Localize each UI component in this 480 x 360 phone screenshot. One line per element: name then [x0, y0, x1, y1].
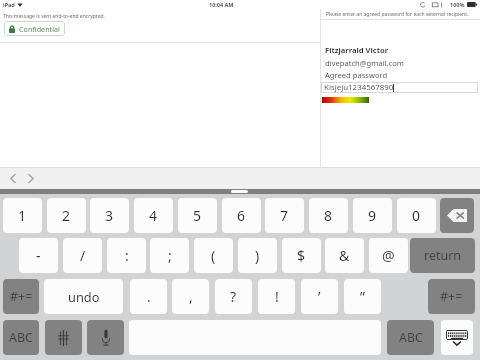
staticText: $: [297, 246, 306, 265]
staticText: ABC: [9, 329, 33, 346]
staticText: 3: [105, 206, 114, 225]
button[interactable]: return: [410, 238, 475, 273]
button[interactable]: undo: [44, 279, 123, 314]
staticText: ABC: [399, 329, 423, 346]
staticText: 2: [62, 206, 71, 225]
button[interactable]: Next field: [21, 168, 41, 188]
button[interactable]: Previous field: [3, 168, 23, 188]
button[interactable]: Dictate: [87, 320, 124, 355]
staticText: ?: [230, 287, 237, 306]
staticText: 6: [237, 206, 246, 225]
button[interactable]: #+=: [3, 279, 39, 314]
staticText: This message is sent end-to-end encrypte…: [3, 13, 105, 20]
staticText: 7: [280, 206, 289, 225]
staticText: 10:04 AM: [209, 1, 234, 8]
staticText: ): [255, 246, 260, 265]
button[interactable]: Next keyboard: [45, 320, 82, 355]
staticText: 1: [18, 206, 27, 225]
button[interactable]: ,: [172, 279, 209, 314]
button[interactable]: ’: [301, 279, 338, 314]
staticText: 9: [368, 206, 377, 225]
button[interactable]: .: [130, 279, 167, 314]
staticText: iPad: [3, 1, 15, 8]
button[interactable]: Confidential: [9, 21, 60, 36]
staticText: return: [424, 247, 462, 264]
staticText: !: [275, 287, 279, 306]
button[interactable]: 3: [90, 198, 129, 233]
button[interactable]: /: [63, 238, 102, 273]
staticText: Please enter an agreed password for each…: [326, 11, 469, 18]
button[interactable]: 4: [134, 198, 173, 233]
button[interactable]: ABC: [387, 320, 434, 355]
button[interactable]: 0: [397, 198, 436, 233]
button[interactable]: 7: [265, 198, 304, 233]
staticText: (: [211, 246, 216, 265]
staticText: undo: [68, 288, 100, 305]
staticText: 8: [324, 206, 333, 225]
staticText: divepatch@gmail.com: [325, 58, 404, 68]
staticText: 4: [149, 206, 158, 225]
staticText: &: [339, 246, 350, 265]
button[interactable]: ;: [150, 238, 189, 273]
staticText: #+=: [440, 288, 463, 305]
button[interactable]: Hide keyboard: [441, 320, 473, 355]
button[interactable]: ): [238, 238, 277, 273]
button[interactable]: Backspace: [440, 198, 474, 233]
button[interactable]: @: [369, 238, 408, 273]
button[interactable]: 1: [3, 198, 42, 233]
staticText: ’: [318, 287, 321, 306]
staticText: ”: [360, 287, 366, 306]
staticText: :: [125, 246, 129, 265]
staticText: Kisjeju1234567890: [324, 82, 394, 93]
button[interactable]: -: [19, 238, 58, 273]
button[interactable]: #+=: [428, 279, 475, 314]
button[interactable]: 2: [47, 198, 86, 233]
staticText: #+=: [10, 288, 33, 305]
button[interactable]: 5: [178, 198, 217, 233]
staticText: -: [36, 246, 41, 265]
button[interactable]: :: [107, 238, 146, 273]
staticText: 5: [193, 206, 202, 225]
staticText: /: [80, 246, 86, 265]
staticText: Fitzjarrald Victor: [325, 45, 389, 55]
button[interactable]: 6: [222, 198, 261, 233]
staticText: .: [147, 287, 151, 306]
button[interactable]: &: [325, 238, 364, 273]
staticText: @: [382, 246, 395, 265]
staticText: ;: [168, 246, 172, 265]
button[interactable]: ”: [344, 279, 381, 314]
button[interactable]: Kisjeju1234567890: [321, 82, 478, 93]
staticText: 0: [412, 206, 421, 225]
button[interactable]: $: [282, 238, 321, 273]
button[interactable]: ?: [215, 279, 252, 314]
button[interactable]: (: [194, 238, 233, 273]
button[interactable]: !: [258, 279, 295, 314]
staticText: 100%: [450, 1, 465, 8]
button[interactable]: 8: [309, 198, 348, 233]
button[interactable]: ABC: [3, 320, 39, 355]
button[interactable]: 9: [353, 198, 392, 233]
staticText: ,: [189, 287, 193, 306]
staticText: Agreed password: [325, 70, 388, 80]
staticText: Confidential: [19, 24, 60, 34]
